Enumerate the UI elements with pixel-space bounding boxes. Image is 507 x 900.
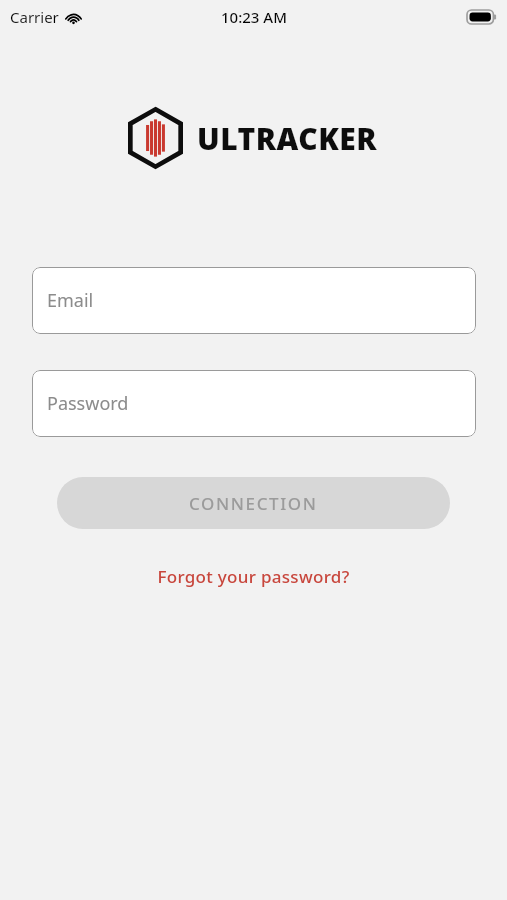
staticText: Email (47, 288, 94, 313)
staticText: Forgot your password? (157, 565, 350, 588)
staticText: 10:23 AM (221, 7, 287, 27)
button[interactable]: Email (32, 267, 476, 334)
staticText: CONNECTION (189, 492, 318, 515)
button[interactable]: Password (32, 370, 476, 437)
staticText: Password (47, 391, 129, 416)
staticText: Carrier (10, 7, 59, 27)
button[interactable]: CONNECTION (57, 477, 450, 529)
staticText: ULTRACKER (197, 118, 378, 159)
button[interactable]: Forgot your password? (0, 558, 507, 594)
